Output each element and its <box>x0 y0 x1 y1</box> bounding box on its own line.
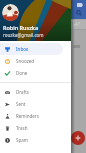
staticText: Done <box>16 70 28 76</box>
button[interactable]: Account <box>2 4 19 21</box>
staticText: rouzka@gmail.com <box>3 32 44 38</box>
button[interactable]: Inbox <box>0 43 63 55</box>
staticText: Trash <box>16 125 28 131</box>
staticText: Reminders <box>16 113 39 119</box>
button[interactable]: Spam <box>0 134 63 146</box>
button[interactable]: Reminders <box>0 110 63 122</box>
staticText: Spam <box>16 137 28 143</box>
button[interactable]: Done <box>0 67 63 79</box>
staticText: Inbox <box>16 46 29 52</box>
staticText: Sent <box>16 101 26 107</box>
button[interactable]: Trash <box>0 122 63 134</box>
staticText: Robin Ruszka <box>3 24 39 31</box>
staticText: Drafts <box>16 89 29 95</box>
staticText: Snoozed <box>16 58 35 64</box>
button[interactable]: Drafts <box>0 86 63 98</box>
button[interactable]: Snoozed <box>0 55 63 67</box>
button[interactable]: Sent <box>0 98 63 110</box>
button[interactable]: Compose <box>71 131 85 145</box>
